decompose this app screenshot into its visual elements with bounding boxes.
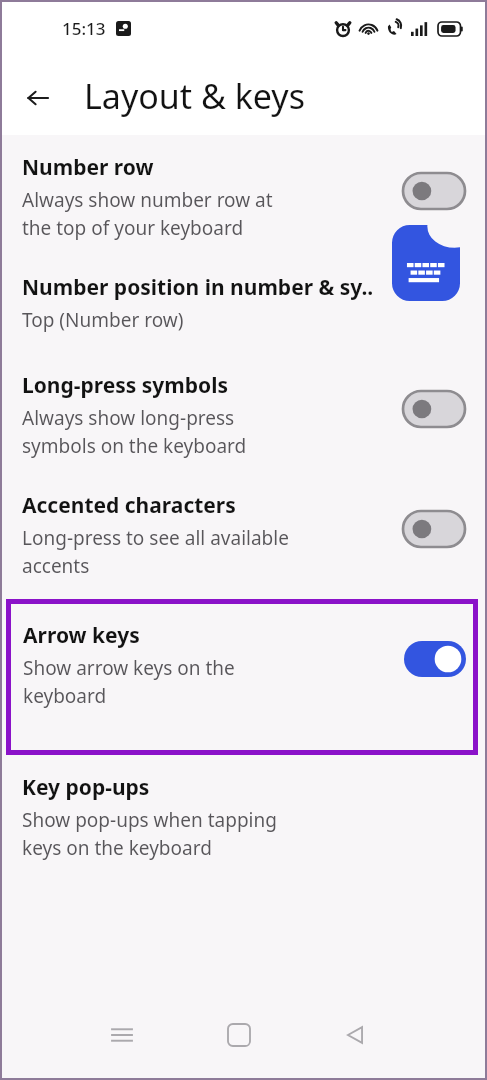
button[interactable]: Switch keyboard bbox=[392, 225, 460, 301]
staticText: Long-press symbols bbox=[22, 371, 229, 400]
staticText: Number position in number & sy.. bbox=[22, 273, 374, 302]
button[interactable]: Back bbox=[16, 76, 60, 120]
button[interactable]: Number position in number & sy.. bbox=[0, 273, 487, 333]
button[interactable]: Toggle off bbox=[403, 511, 465, 547]
button[interactable]: Toggle on bbox=[404, 641, 466, 677]
button[interactable]: Arrow keys bbox=[6, 599, 478, 755]
button[interactable]: Long-press symbols bbox=[0, 371, 487, 459]
staticText: Show pop-ups when tapping keys on the ke… bbox=[22, 807, 277, 861]
button[interactable]: Recent apps bbox=[100, 1013, 144, 1057]
button[interactable]: Back bbox=[333, 1013, 377, 1057]
staticText: Top (Number row) bbox=[22, 307, 184, 333]
staticText: Accented characters bbox=[22, 491, 236, 520]
button[interactable]: Number row bbox=[0, 153, 487, 241]
button[interactable]: Home bbox=[217, 1013, 261, 1057]
button[interactable]: Toggle off bbox=[403, 391, 465, 427]
button[interactable]: Key pop-ups bbox=[0, 773, 487, 861]
staticText: Always show number row at the top of you… bbox=[22, 187, 273, 241]
staticText: Long-press to see all available accents bbox=[22, 525, 289, 579]
button[interactable]: Accented characters bbox=[0, 491, 487, 579]
staticText: Layout & keys bbox=[84, 73, 305, 119]
staticText: Show arrow keys on the keyboard bbox=[23, 655, 235, 709]
staticText: Key pop-ups bbox=[22, 773, 150, 802]
button[interactable]: Arrow keys bbox=[6, 599, 478, 709]
staticText: Number row bbox=[22, 153, 154, 182]
staticText: Always show long-press symbols on the ke… bbox=[22, 405, 247, 459]
staticText: Arrow keys bbox=[23, 621, 140, 650]
button[interactable]: Toggle off bbox=[403, 173, 465, 209]
staticText: 15:13 bbox=[62, 17, 106, 40]
